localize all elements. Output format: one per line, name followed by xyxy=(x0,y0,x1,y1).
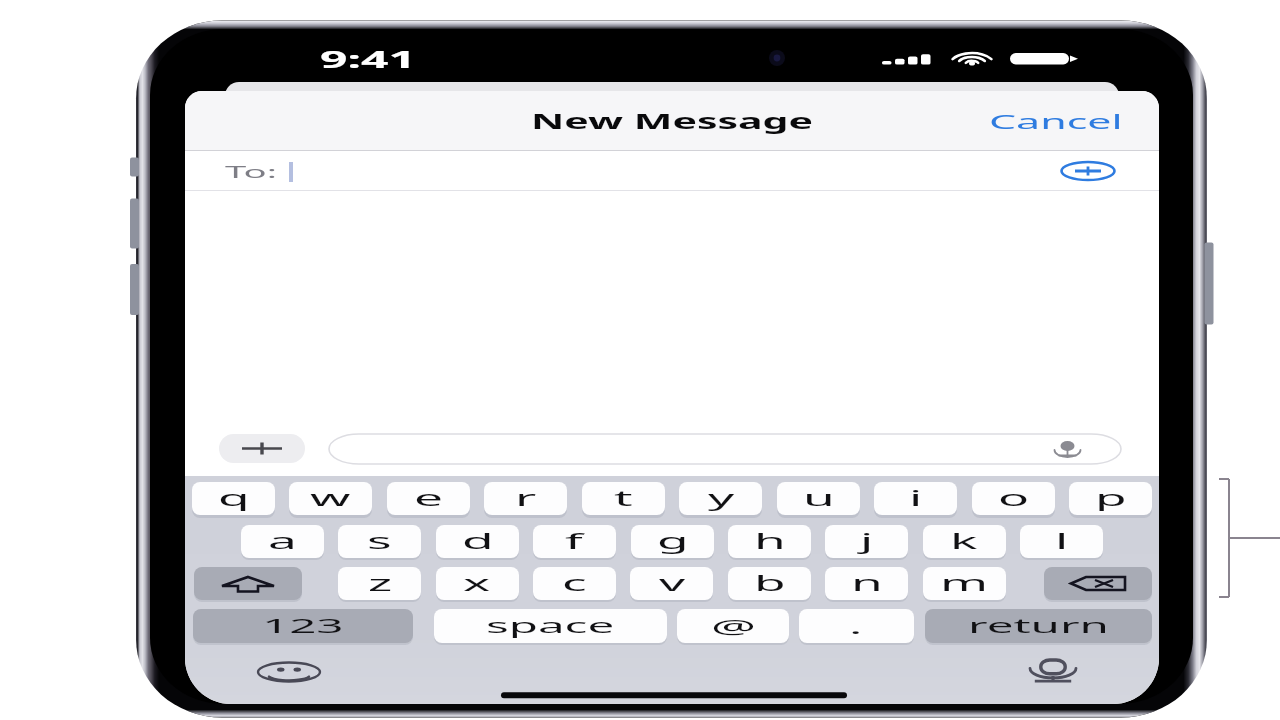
button[interactable]: n xyxy=(825,567,908,600)
staticText: s xyxy=(367,527,394,556)
button[interactable]: t xyxy=(582,482,665,515)
button[interactable]: r xyxy=(484,482,567,515)
staticText: n xyxy=(851,569,883,598)
button[interactable]: u xyxy=(777,482,860,515)
staticText: z xyxy=(368,569,392,598)
staticText: o xyxy=(998,484,1030,513)
staticText: . xyxy=(849,613,864,640)
staticText: a xyxy=(268,527,297,556)
button[interactable]: x xyxy=(436,567,519,600)
button[interactable]: c xyxy=(533,567,616,600)
staticText: To: xyxy=(225,160,279,183)
staticText: t xyxy=(614,484,634,513)
button[interactable]: Backspace xyxy=(1044,567,1152,600)
button[interactable]: return xyxy=(925,609,1152,643)
staticText: m xyxy=(940,569,989,598)
button[interactable]: k xyxy=(923,525,1006,558)
button[interactable]: @ xyxy=(677,609,789,643)
staticText: r xyxy=(515,484,537,513)
button[interactable]: . xyxy=(799,609,914,643)
button[interactable]: Cancel xyxy=(971,100,1159,143)
staticText: b xyxy=(754,569,786,598)
button[interactable]: a xyxy=(241,525,324,558)
staticText: @ xyxy=(711,613,756,640)
staticText: i xyxy=(909,484,924,513)
staticText: 123 xyxy=(262,613,344,639)
staticText: e xyxy=(414,484,443,513)
staticText: p xyxy=(1095,484,1127,513)
button[interactable]: Add contact xyxy=(1059,152,1117,190)
button[interactable]: i xyxy=(874,482,957,515)
staticText: v xyxy=(659,569,686,598)
staticText: w xyxy=(310,484,352,513)
button[interactable]: Dictation xyxy=(1027,656,1079,688)
staticText: l xyxy=(1055,527,1070,556)
staticText: f xyxy=(565,527,585,556)
button[interactable]: b xyxy=(728,567,811,600)
button[interactable]: o xyxy=(972,482,1055,515)
staticText: d xyxy=(462,527,494,556)
staticText: y xyxy=(708,484,735,513)
staticText: 9:41 xyxy=(320,42,416,75)
staticText: k xyxy=(950,527,979,556)
button[interactable]: s xyxy=(338,525,421,558)
button[interactable]: f xyxy=(533,525,616,558)
button[interactable]: v xyxy=(630,567,713,600)
button[interactable]: Message text field xyxy=(329,434,1121,464)
staticText: return xyxy=(968,613,1110,639)
staticText: space xyxy=(486,613,616,639)
button[interactable]: m xyxy=(923,567,1006,600)
staticText: q xyxy=(218,484,250,513)
button[interactable]: Add attachment xyxy=(219,434,305,463)
button[interactable]: w xyxy=(289,482,372,515)
staticText: c xyxy=(562,569,589,598)
button[interactable]: Emoji keyboard xyxy=(254,656,324,688)
staticText: New Message xyxy=(531,107,813,135)
staticText: j xyxy=(860,527,875,556)
staticText: g xyxy=(657,527,689,556)
staticText: Cancel xyxy=(989,108,1123,135)
button[interactable]: l xyxy=(1020,525,1103,558)
button[interactable]: y xyxy=(679,482,762,515)
button[interactable]: j xyxy=(825,525,908,558)
button[interactable]: e xyxy=(387,482,470,515)
button[interactable]: h xyxy=(728,525,811,558)
staticText: x xyxy=(463,569,492,598)
button[interactable]: 123 xyxy=(193,609,413,643)
button[interactable]: Shift xyxy=(194,567,302,600)
button[interactable]: g xyxy=(631,525,714,558)
staticText: u xyxy=(803,484,835,513)
staticText: h xyxy=(754,527,786,556)
button[interactable]: p xyxy=(1069,482,1152,515)
button[interactable]: d xyxy=(436,525,519,558)
button[interactable]: q xyxy=(192,482,275,515)
button[interactable]: z xyxy=(338,567,421,600)
button[interactable]: space xyxy=(434,609,667,643)
